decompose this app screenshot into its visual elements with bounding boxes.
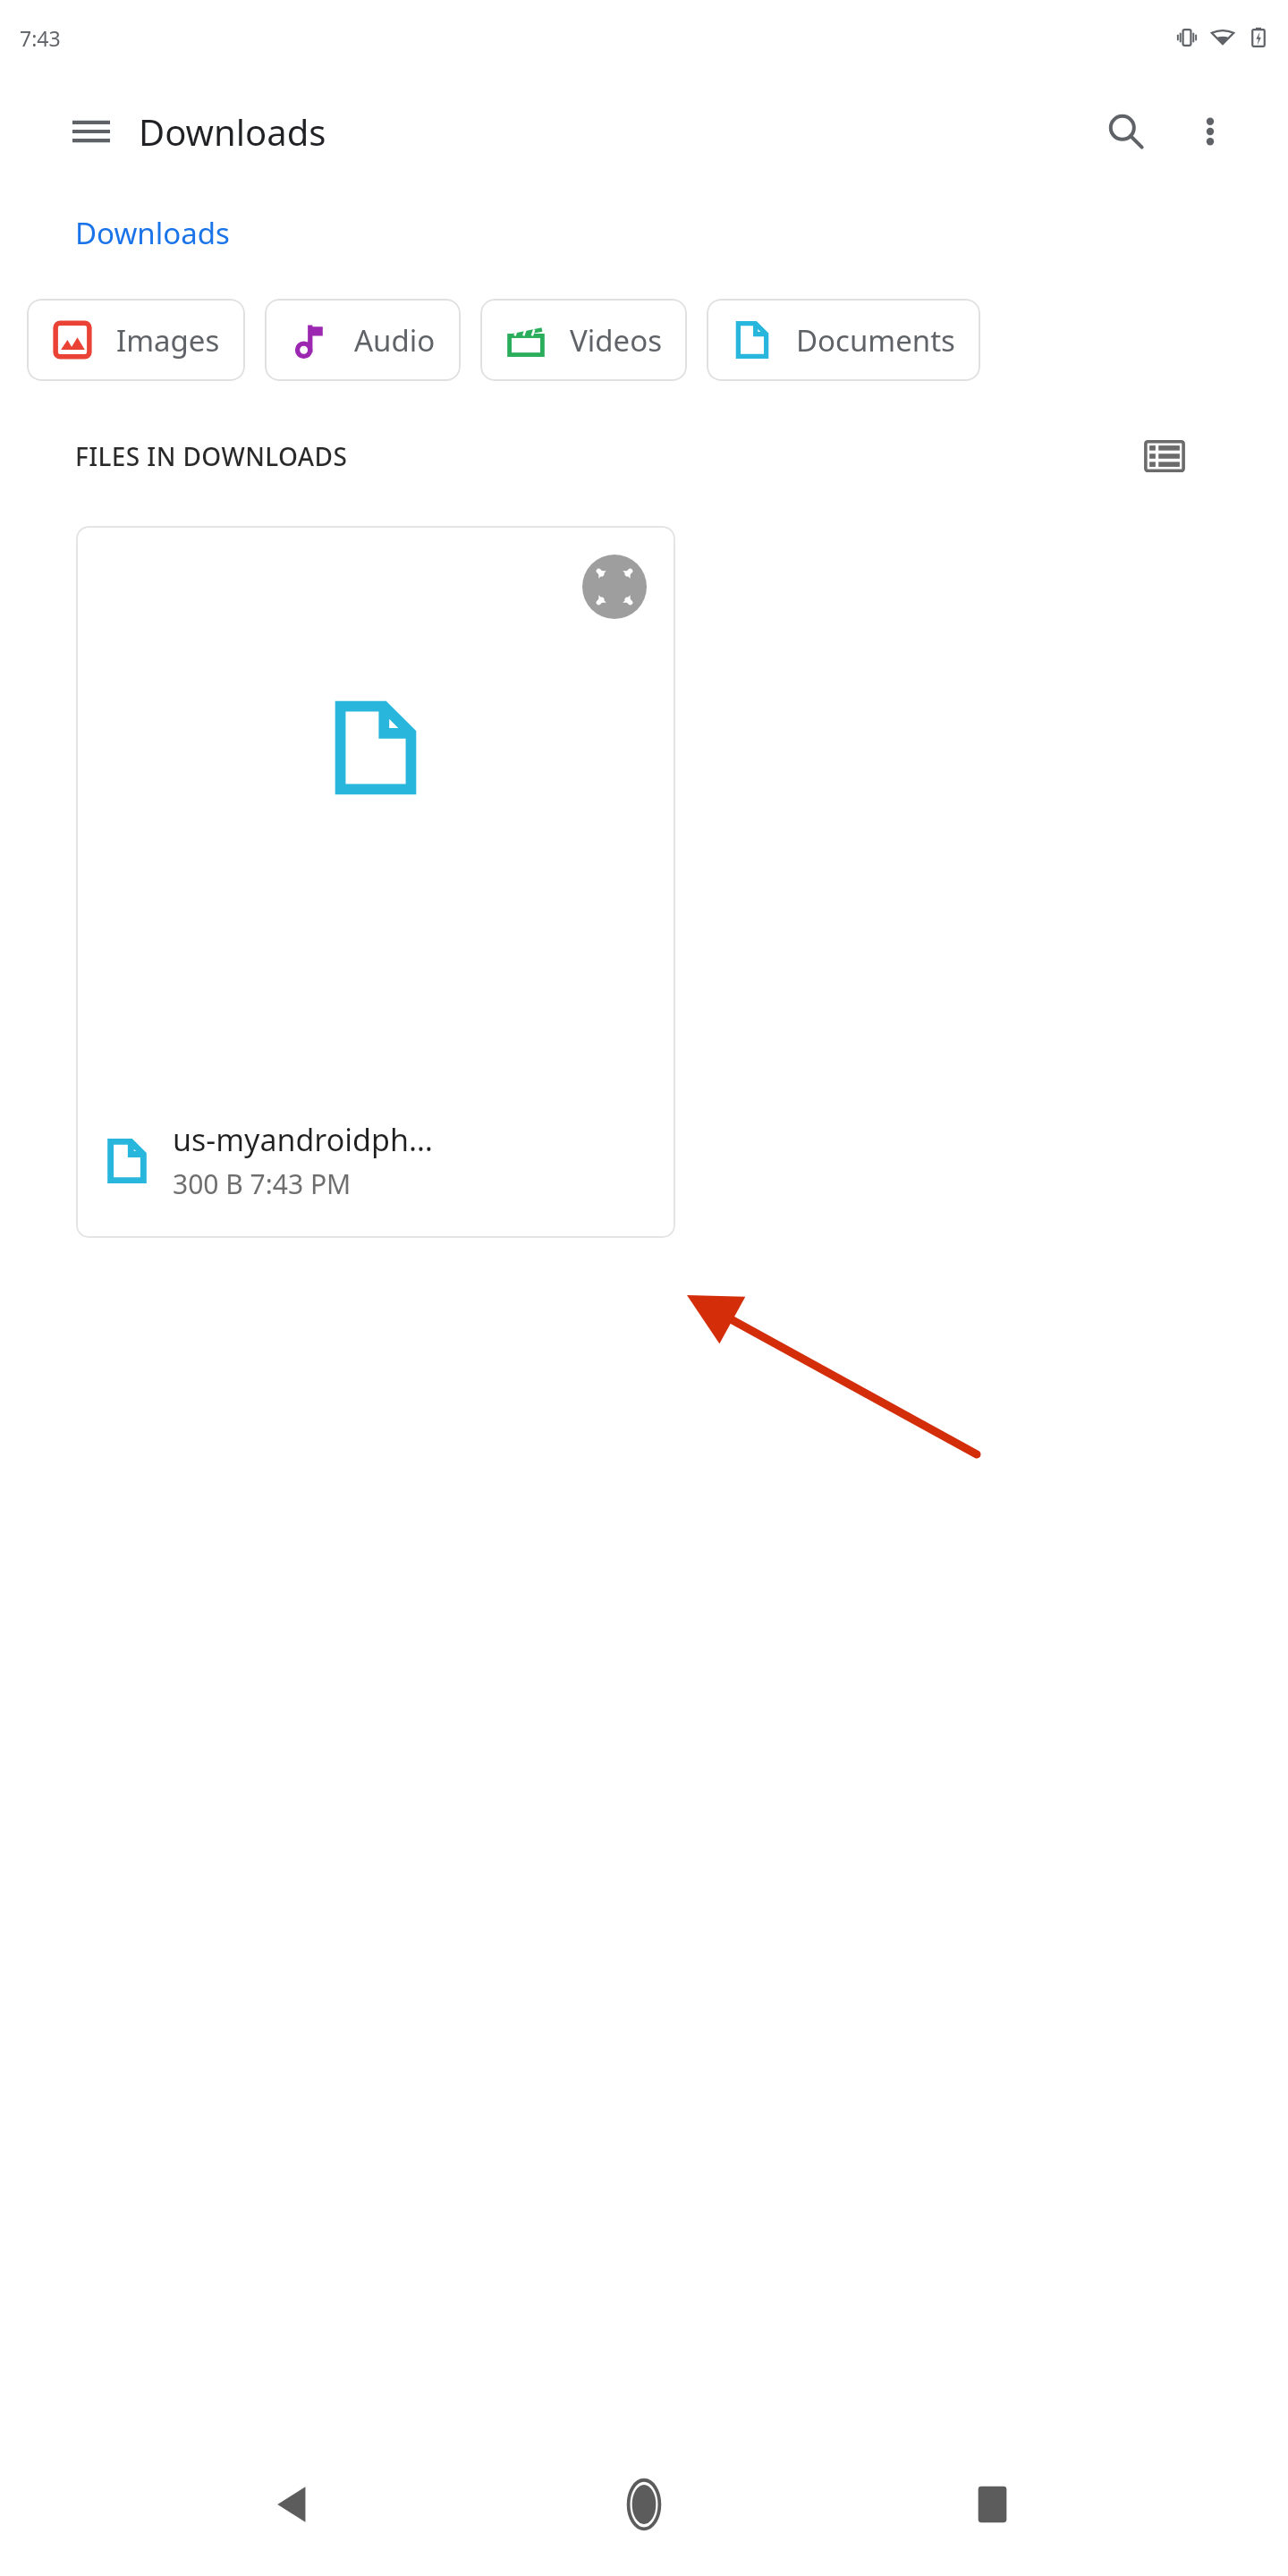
staticText: Downloads bbox=[75, 213, 230, 253]
button[interactable]: More options bbox=[1172, 93, 1249, 170]
button[interactable]: Expand preview bbox=[582, 555, 647, 619]
staticText: Audio bbox=[354, 320, 436, 360]
button[interactable]: Back bbox=[241, 2451, 349, 2558]
staticText: 7:43 bbox=[20, 24, 61, 52]
button[interactable]: Documents bbox=[707, 299, 980, 381]
staticText: FILES IN DOWNLOADS bbox=[75, 439, 348, 473]
button[interactable]: Audio bbox=[265, 299, 461, 381]
staticText: us-myandroidph… bbox=[173, 1119, 433, 1160]
staticText: Videos bbox=[570, 320, 662, 360]
staticText: Downloads bbox=[139, 107, 326, 156]
button[interactable]: Open navigation drawer bbox=[64, 105, 118, 158]
button[interactable]: Search bbox=[1088, 93, 1165, 170]
button[interactable]: Expand preview bbox=[76, 526, 675, 1238]
button[interactable]: Home bbox=[590, 2451, 698, 2558]
button[interactable]: Images bbox=[27, 299, 245, 381]
staticText: Images bbox=[116, 320, 220, 360]
button[interactable]: Videos bbox=[480, 299, 687, 381]
staticText: 300 B 7:43 PM bbox=[173, 1165, 352, 1202]
button[interactable]: Recent apps bbox=[939, 2451, 1046, 2558]
button[interactable]: Downloads bbox=[75, 213, 230, 253]
button[interactable]: Switch to list view bbox=[1131, 422, 1199, 490]
staticText: Documents bbox=[796, 320, 955, 360]
